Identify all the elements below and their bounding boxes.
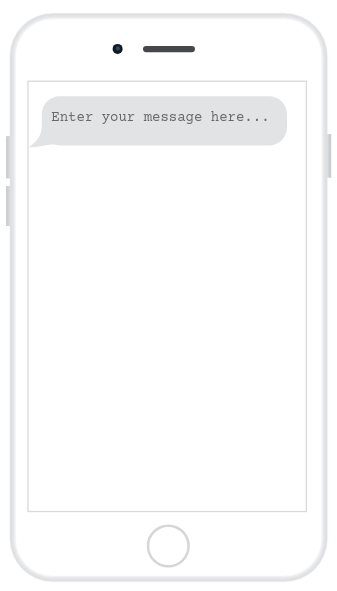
- button[interactable]: Power: [326, 134, 332, 177]
- button[interactable]: Volume down: [6, 186, 12, 226]
- button[interactable]: Volume up: [6, 136, 12, 178]
- button[interactable]: Home: [148, 526, 189, 567]
- button[interactable]: Enter your message here...: [42, 96, 287, 145]
